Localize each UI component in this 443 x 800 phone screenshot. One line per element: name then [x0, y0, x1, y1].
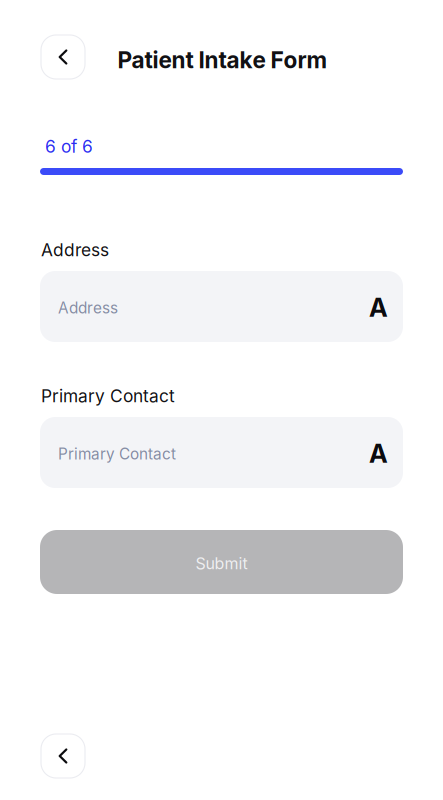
button[interactable]: Address — [40, 271, 403, 342]
staticText: Patient Intake Form — [117, 46, 327, 74]
staticText: 6 of 6 — [45, 136, 93, 157]
button[interactable]: Back — [40, 35, 85, 79]
button[interactable]: Back — [40, 734, 85, 778]
staticText: Address — [58, 299, 118, 317]
staticText: A — [369, 292, 388, 323]
staticText: Primary Contact — [41, 385, 175, 406]
staticText: Primary Contact — [58, 445, 176, 463]
staticText: A — [369, 438, 388, 469]
staticText: Address — [41, 239, 109, 260]
staticText: Submit — [195, 554, 247, 573]
button[interactable]: Submit — [40, 530, 403, 594]
button[interactable]: Primary Contact — [40, 417, 403, 488]
